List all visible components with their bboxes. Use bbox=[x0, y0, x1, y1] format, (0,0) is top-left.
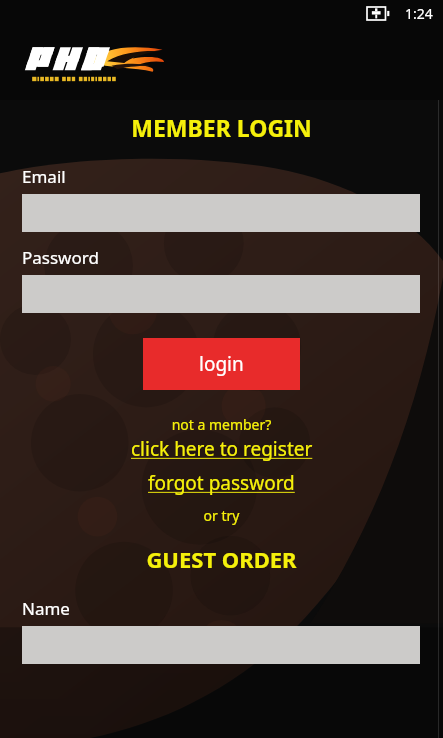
staticText: Password bbox=[22, 246, 99, 269]
button[interactable]: click here to register bbox=[131, 436, 313, 462]
staticText: login bbox=[199, 351, 244, 377]
staticText: Email bbox=[22, 165, 66, 188]
staticText: not a member? bbox=[0, 415, 443, 434]
staticText: forgot password bbox=[148, 470, 295, 496]
button[interactable]: login bbox=[143, 338, 300, 390]
staticText: GUEST ORDER bbox=[0, 544, 443, 574]
button[interactable]: forgot password bbox=[148, 470, 295, 496]
staticText: 1:24 bbox=[405, 4, 433, 23]
staticText: MEMBER LOGIN bbox=[0, 112, 443, 143]
staticText: click here to register bbox=[131, 436, 313, 462]
staticText: Name bbox=[22, 597, 70, 620]
staticText: or try bbox=[0, 506, 443, 525]
